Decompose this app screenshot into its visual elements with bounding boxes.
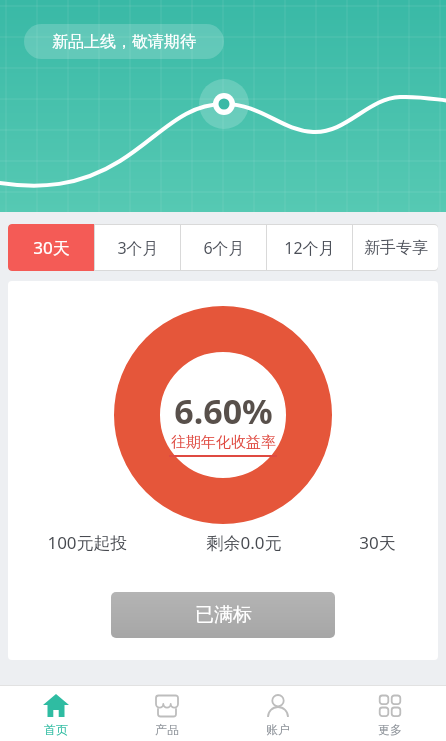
button[interactable]: 产品	[111, 694, 222, 741]
staticText: 往期年化收益率	[171, 433, 276, 452]
button[interactable]: 新品上线，敬请期待	[24, 24, 224, 59]
staticText: 新品上线，敬请期待	[52, 32, 196, 52]
staticText: 首页	[44, 722, 68, 737]
staticText: 剩余0.0元	[206, 531, 282, 554]
button[interactable]: 更多	[334, 694, 446, 741]
button[interactable]: 账户	[222, 694, 334, 741]
staticText: 12个月	[284, 237, 335, 259]
button[interactable]: 新手专享	[353, 225, 438, 270]
staticText: 产品	[155, 722, 179, 737]
button[interactable]: 30天	[8, 224, 94, 271]
staticText: 新手专享	[364, 238, 428, 258]
button[interactable]: 已满标	[111, 592, 335, 638]
button[interactable]: 6个月	[181, 225, 266, 270]
staticText: 30天	[33, 236, 70, 259]
staticText: 3个月	[117, 237, 159, 259]
staticText: 30天	[359, 531, 396, 554]
staticText: 6.60%	[174, 388, 273, 434]
button[interactable]: 12个月	[267, 225, 352, 270]
staticText: 已满标	[195, 603, 252, 627]
button[interactable]: 3个月	[95, 225, 180, 270]
staticText: 6个月	[203, 237, 245, 259]
staticText: 账户	[266, 722, 290, 737]
staticText: 更多	[378, 722, 402, 737]
button[interactable]: 首页	[0, 694, 111, 741]
staticText: 100元起投	[47, 531, 128, 554]
